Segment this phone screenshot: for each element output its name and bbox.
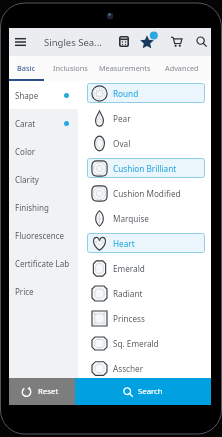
button[interactable]: Cushion Modified [87,183,205,208]
staticText: Price [15,286,34,297]
button[interactable]: Pear [87,108,205,133]
button[interactable]: Asscher [87,358,205,378]
staticText: Inclusions [53,63,88,73]
button[interactable]: Shape [9,81,78,109]
staticText: Cushion Modified [113,188,181,199]
staticText: Certificate Lab [15,258,70,269]
button[interactable]: Basic [9,56,44,81]
button[interactable]: Finishing [9,193,78,221]
staticText: Princess [113,313,145,324]
button[interactable]: Emerald [87,258,205,283]
button[interactable]: Certificate Lab [9,249,78,277]
staticText: Oval [113,138,131,149]
button[interactable]: Sq. Emerald [87,333,205,358]
staticText: Advanced [165,63,199,73]
button[interactable]: Princess [87,308,205,333]
button[interactable]: Favourites [137,30,159,52]
button[interactable]: Carat [9,109,78,137]
button[interactable]: Compare [114,31,134,51]
staticText: Heart [113,238,135,249]
staticText: Clarity [15,174,39,185]
staticText: Pear [113,113,131,124]
staticText: Radiant [113,288,143,299]
button[interactable]: Clarity [9,165,78,193]
staticText: Cushion Brilliant [113,163,177,174]
button[interactable]: Search [75,378,211,405]
staticText: Finishing [15,202,49,213]
staticText: Color [15,146,36,157]
button[interactable]: Heart [87,233,205,258]
staticText: Fluorescence [15,230,65,241]
button[interactable]: Cart [166,31,186,51]
button[interactable]: Measurements [96,56,153,81]
button[interactable]: Advanced [153,56,211,81]
staticText: Emerald [113,263,145,274]
button[interactable]: Cushion Brilliant [87,158,205,183]
button[interactable]: Search [191,31,211,51]
staticText: Asscher [113,363,144,374]
button[interactable]: Inclusions [44,56,96,81]
staticText: Measurements [99,63,151,73]
staticText: Basic [17,63,36,73]
staticText: Singles Sea... [44,36,102,49]
button[interactable]: Fluorescence [9,221,78,249]
button[interactable]: Menu [10,32,30,52]
button[interactable]: Color [9,137,78,165]
button[interactable]: Price [9,277,78,305]
staticText: Marquise [113,213,149,224]
button[interactable]: Oval [87,133,205,158]
staticText: Carat [15,118,36,129]
button[interactable]: Marquise [87,208,205,233]
button[interactable]: Round [87,83,205,108]
button[interactable]: Radiant [87,283,205,308]
staticText: Sq. Emerald [113,338,159,349]
staticText: Shape [15,90,39,101]
staticText: Reset [38,386,59,397]
button[interactable]: Reset [9,378,75,405]
staticText: Search [138,386,163,397]
staticText: Round [113,88,139,99]
